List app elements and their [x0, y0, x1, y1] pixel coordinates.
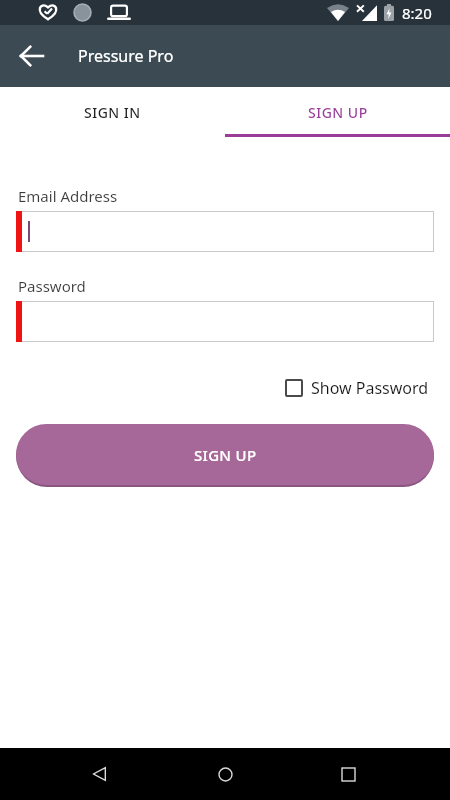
staticText: Show Password — [311, 377, 429, 399]
button[interactable]: SIGN UP — [16, 424, 434, 485]
staticText: Email Address — [18, 186, 118, 206]
button[interactable]: SIGN UP — [225, 87, 450, 137]
staticText: SIGN UP — [194, 445, 257, 465]
button[interactable]: Show Password — [285, 377, 429, 399]
staticText: 8:20 — [402, 3, 432, 23]
staticText: Pressure Pro — [78, 45, 174, 67]
button[interactable] — [78, 752, 122, 796]
button[interactable] — [326, 752, 370, 796]
staticText: Password — [18, 276, 86, 296]
staticText: SIGN IN — [84, 103, 141, 122]
button[interactable] — [21, 45, 43, 67]
button[interactable]: SIGN IN — [0, 87, 225, 137]
button[interactable] — [203, 752, 247, 796]
staticText: SIGN UP — [308, 103, 368, 122]
